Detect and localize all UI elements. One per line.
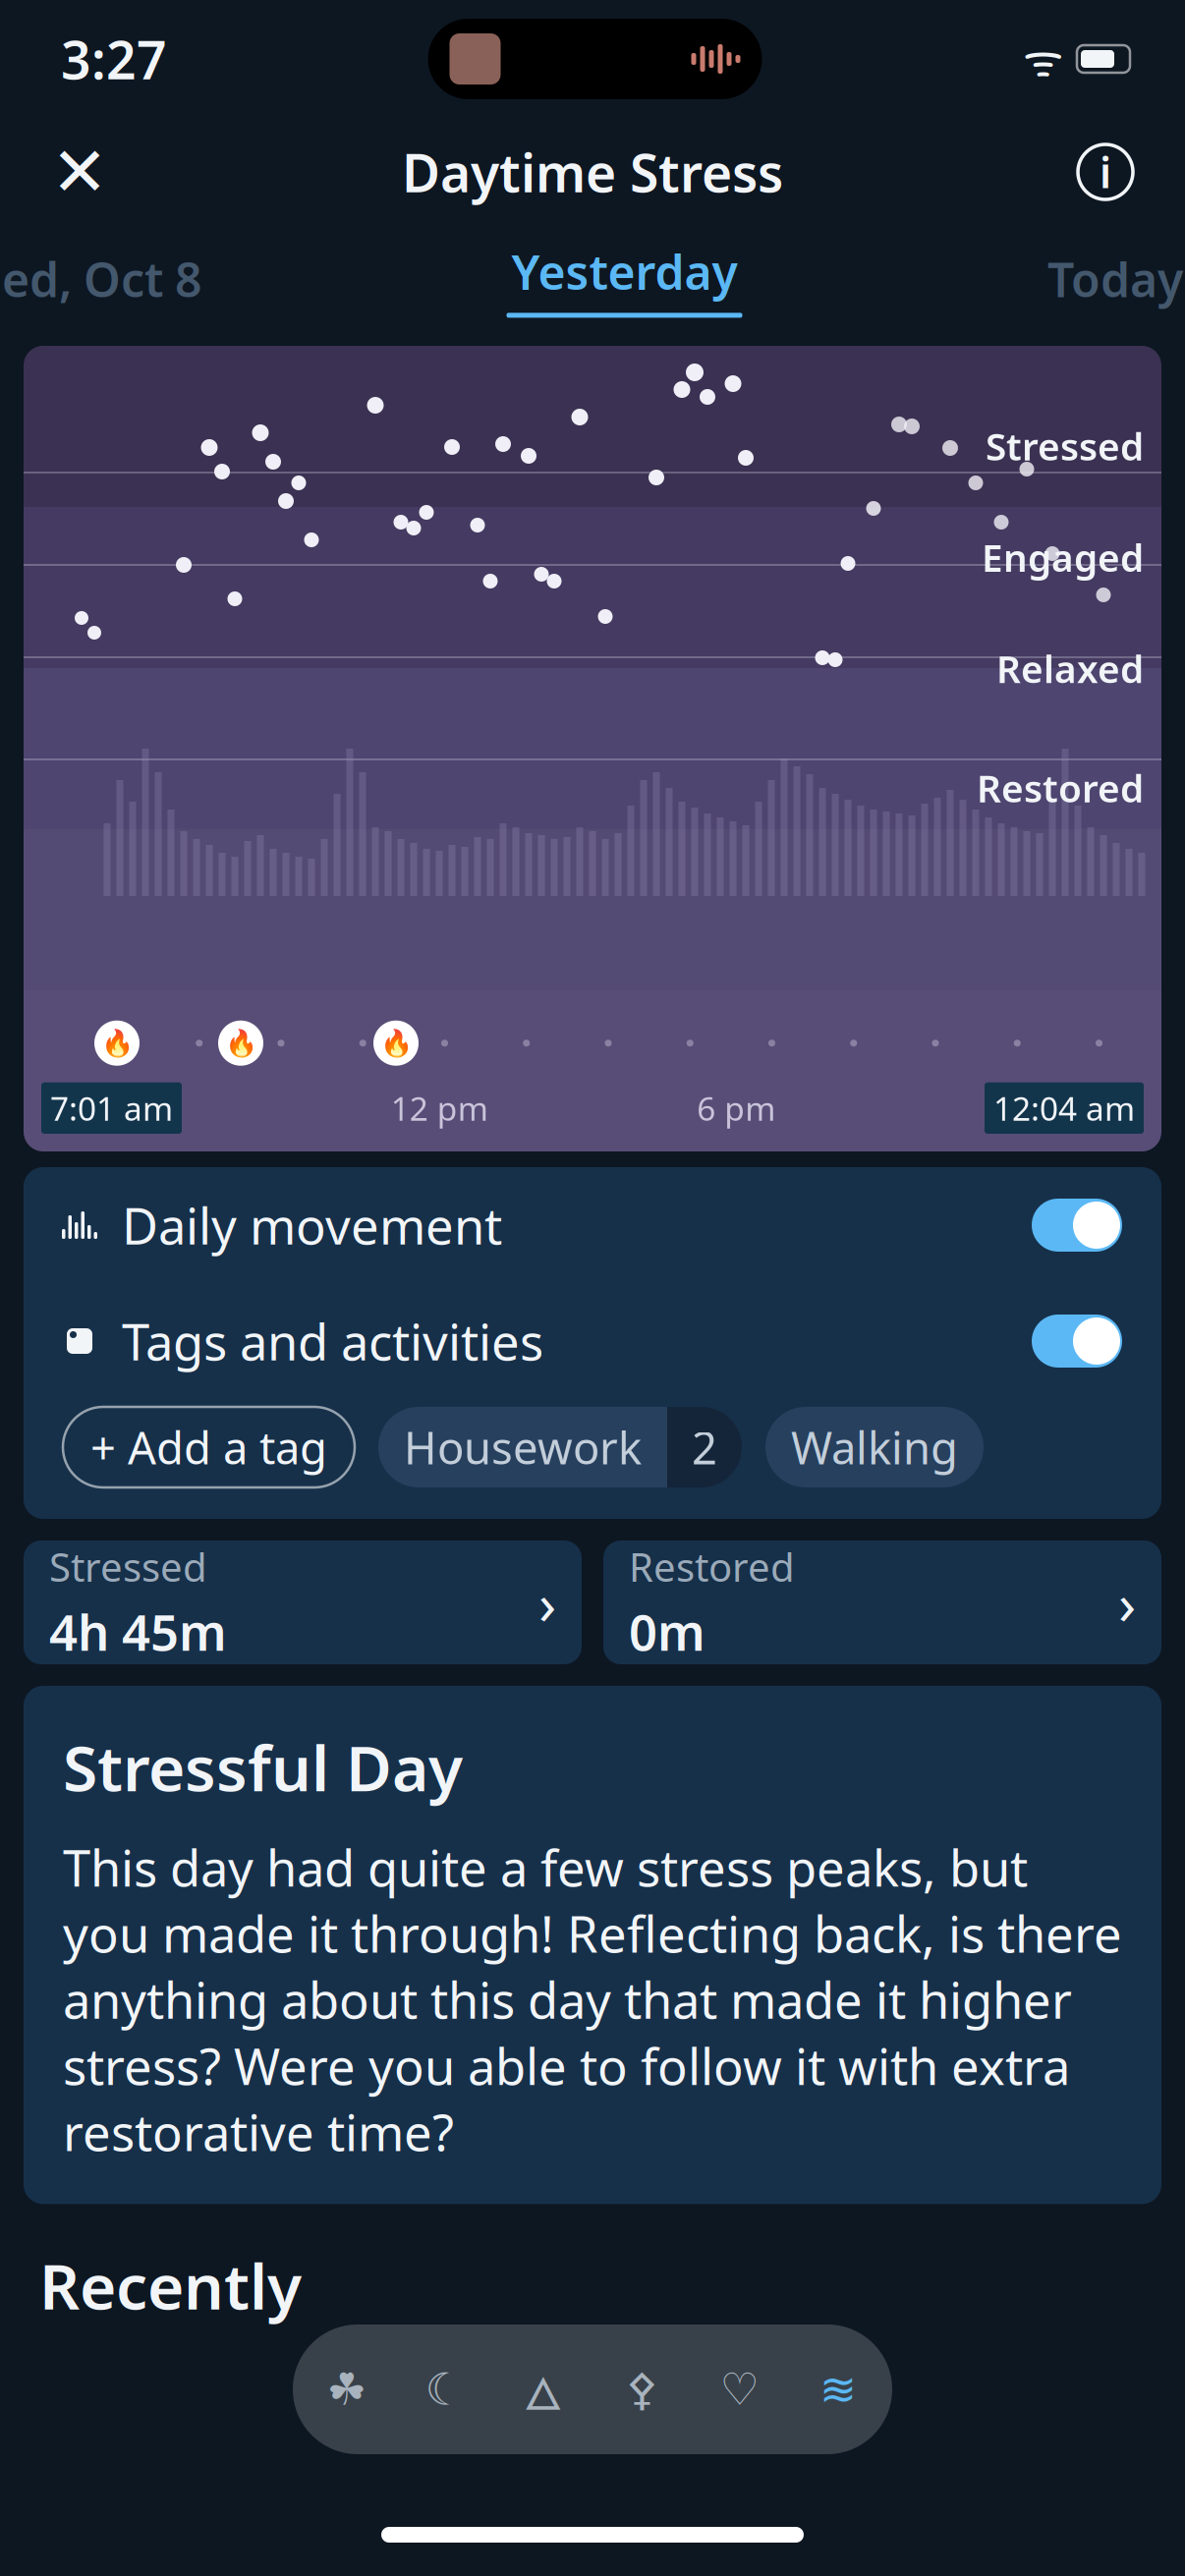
staticText: Stressful Day [63, 1725, 463, 1809]
staticText: + Add a tag [90, 1418, 327, 1477]
staticText: ☾ [425, 2364, 465, 2415]
button[interactable]: + Add a tag [63, 1407, 355, 1487]
button[interactable]: Sleep [409, 2353, 481, 2426]
staticText: Today [1047, 248, 1183, 310]
staticText: Recently [39, 2243, 302, 2327]
staticText: 6 pm [697, 1086, 776, 1130]
button[interactable]: Stressed [24, 1540, 582, 1664]
staticText: 2 [692, 1418, 717, 1477]
button[interactable]: Yesterday [507, 240, 742, 318]
button[interactable]: Information [1061, 128, 1150, 216]
staticText: Relaxed [996, 643, 1144, 694]
staticText: i [1100, 144, 1111, 200]
staticText: 3:27 [61, 24, 167, 94]
button[interactable]: Tags and activities [24, 1283, 1161, 1399]
staticText: ✕ [51, 133, 108, 211]
staticText: 🔥 [101, 1028, 133, 1058]
button[interactable]: Recover [310, 2353, 383, 2426]
button[interactable]: Health [704, 2353, 776, 2426]
staticText: Yesterday [511, 240, 737, 303]
button[interactable]: Restored [603, 1540, 1161, 1664]
button[interactable]: Strain [507, 2353, 580, 2426]
staticText: ♡ [720, 2364, 760, 2415]
staticText: 🔥 [380, 1028, 412, 1058]
staticText: ᯤ [1023, 29, 1063, 89]
staticText: Walking [791, 1418, 958, 1477]
staticText: This day had quite a few stress peaks, b… [63, 1834, 1122, 2165]
button[interactable]: Today [1047, 248, 1183, 310]
staticText: 12 pm [391, 1086, 488, 1130]
staticText: ≋ [819, 2364, 857, 2415]
staticText: ⚴ [625, 2364, 658, 2415]
staticText: Restored [629, 1540, 795, 1592]
staticText: Stressed [49, 1540, 207, 1592]
button[interactable]: ed, Oct 8 [2, 248, 201, 310]
staticText: Tags and activities [122, 1308, 543, 1374]
staticText: 🜂 [524, 2345, 563, 2434]
staticText: 4h 45m [49, 1598, 227, 1664]
staticText: 🔥 [225, 1028, 257, 1058]
button[interactable]: Housework [378, 1407, 742, 1487]
staticText: Stressed [986, 420, 1144, 471]
staticText: › [1118, 1564, 1136, 1641]
staticText: Daily movement [122, 1192, 502, 1258]
staticText: › [538, 1564, 556, 1641]
staticText: Housework [404, 1418, 642, 1477]
staticText: Restored [977, 762, 1144, 813]
button[interactable]: Body [605, 2353, 678, 2426]
button[interactable]: Walking [765, 1407, 984, 1487]
staticText: ☘ [327, 2364, 367, 2415]
staticText: 7:01 am [50, 1086, 173, 1130]
staticText: Daytime Stress [402, 137, 783, 207]
button[interactable]: Daily movement [24, 1167, 1161, 1283]
button[interactable]: Stress [802, 2353, 875, 2426]
staticText: 12:04 am [993, 1086, 1135, 1130]
staticText: ed, Oct 8 [2, 248, 201, 310]
button[interactable]: Close [35, 128, 124, 216]
staticText: Engaged [982, 532, 1144, 582]
staticText: 0m [629, 1598, 705, 1664]
